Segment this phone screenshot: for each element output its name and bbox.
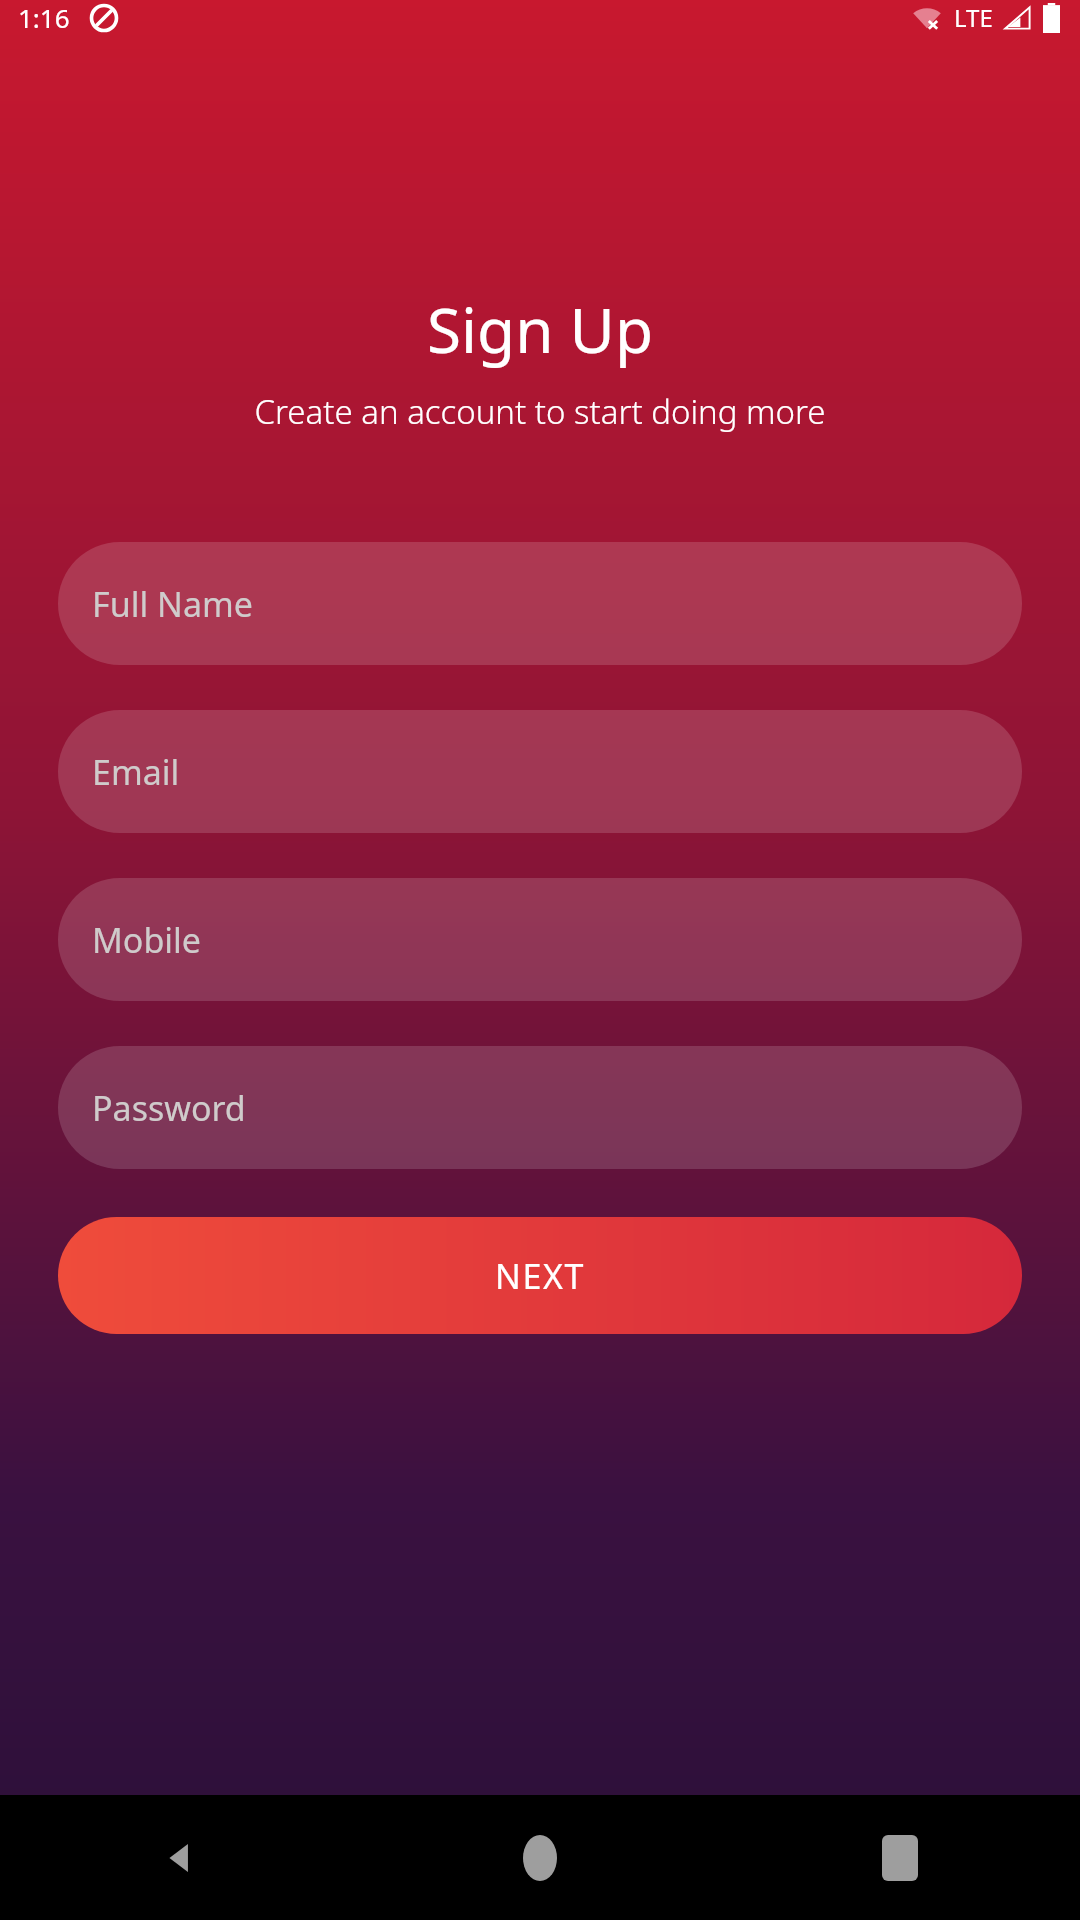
button[interactable]: Mobile [58,878,1022,1001]
staticText: NEXT [495,1253,585,1299]
staticText: Mobile [92,917,202,963]
staticText: Password [92,1085,246,1131]
staticText: Email [92,749,180,795]
button[interactable]: Recent apps [720,1795,1080,1920]
staticText: 1:16 [18,0,70,35]
button[interactable]: Full Name [58,542,1022,665]
staticText: LTE [954,1,993,34]
staticText: Sign Up [0,287,1080,371]
button[interactable]: Password [58,1046,1022,1169]
button[interactable]: Email [58,710,1022,833]
staticText: Full Name [92,581,253,627]
button[interactable]: NEXT [58,1217,1022,1334]
button[interactable]: Home [360,1795,720,1920]
button[interactable]: Back [0,1795,360,1920]
staticText: Create an account to start doing more [0,389,1080,434]
